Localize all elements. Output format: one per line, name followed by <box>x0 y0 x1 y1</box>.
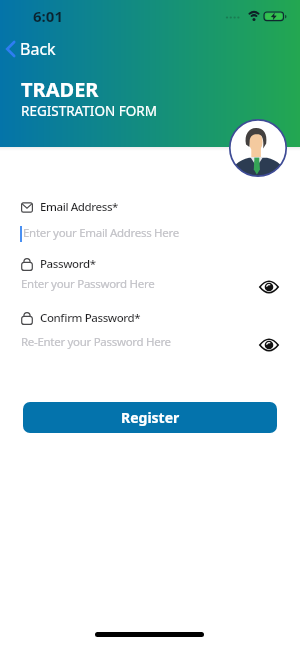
staticText: REGISTRATION FORM <box>21 102 157 120</box>
button[interactable] <box>259 338 279 352</box>
staticText: Email Address* <box>40 199 118 215</box>
button[interactable]: Enter your Password Here <box>20 275 280 297</box>
staticText: Enter your Email Address Here <box>23 225 179 241</box>
button[interactable]: Back <box>2 36 58 62</box>
staticText: Re-Enter your Password Here <box>21 334 171 350</box>
staticText: TRADER <box>21 76 99 103</box>
staticText: 6:01 <box>33 6 63 26</box>
staticText: Password* <box>40 256 96 272</box>
staticText: Register <box>121 408 180 427</box>
button[interactable]: Enter your Email Address Here <box>20 224 280 246</box>
staticText: Back <box>20 38 56 60</box>
staticText: Enter your Password Here <box>21 276 155 292</box>
button[interactable] <box>259 280 279 294</box>
staticText: Confirm Password* <box>40 310 141 326</box>
button[interactable]: Re-Enter your Password Here <box>20 333 280 355</box>
button[interactable]: Register <box>23 402 277 433</box>
